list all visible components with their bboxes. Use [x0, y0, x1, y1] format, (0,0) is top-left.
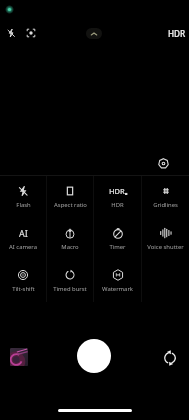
- button[interactable]: Switch camera: [159, 347, 180, 368]
- button[interactable]: Shutter: [77, 339, 111, 373]
- staticText: HDR: [109, 186, 125, 196]
- staticText: Timer: [109, 243, 126, 251]
- staticText: Aspect ratio: [54, 201, 87, 209]
- button[interactable]: Flash: [0, 176, 46, 218]
- button[interactable]: Tilt-shift: [0, 260, 46, 302]
- button[interactable]: Scene detection: [21, 23, 41, 43]
- staticText: Macro: [61, 243, 79, 251]
- button[interactable]: Gridlines: [142, 176, 189, 218]
- staticText: AI camera: [9, 243, 37, 251]
- button[interactable]: Voice shutter: [142, 218, 189, 260]
- staticText: Tilt-shift: [12, 285, 35, 293]
- staticText: Gridlines: [153, 201, 178, 209]
- button[interactable]: Flash off: [1, 23, 21, 43]
- button[interactable]: Watermark: [94, 260, 141, 302]
- button[interactable]: Timed burst: [47, 260, 93, 302]
- button[interactable]: AI: [0, 218, 46, 260]
- staticText: Voice shutter: [147, 243, 184, 251]
- staticText: HDR: [168, 28, 186, 39]
- staticText: Timed burst: [53, 285, 87, 293]
- button[interactable]: HDR: [94, 176, 141, 218]
- button[interactable]: Settings: [155, 155, 172, 172]
- button[interactable]: Gallery: [10, 348, 28, 366]
- button[interactable]: Expand options: [86, 28, 102, 39]
- button[interactable]: Macro: [47, 218, 93, 260]
- staticText: Flash: [16, 201, 31, 209]
- button[interactable]: HDR: [165, 25, 189, 42]
- staticText: HDR: [111, 201, 124, 209]
- staticText: AI: [19, 227, 28, 239]
- button[interactable]: Timer: [94, 218, 141, 260]
- staticText: Watermark: [102, 285, 133, 293]
- button[interactable]: Aspect ratio: [47, 176, 93, 218]
